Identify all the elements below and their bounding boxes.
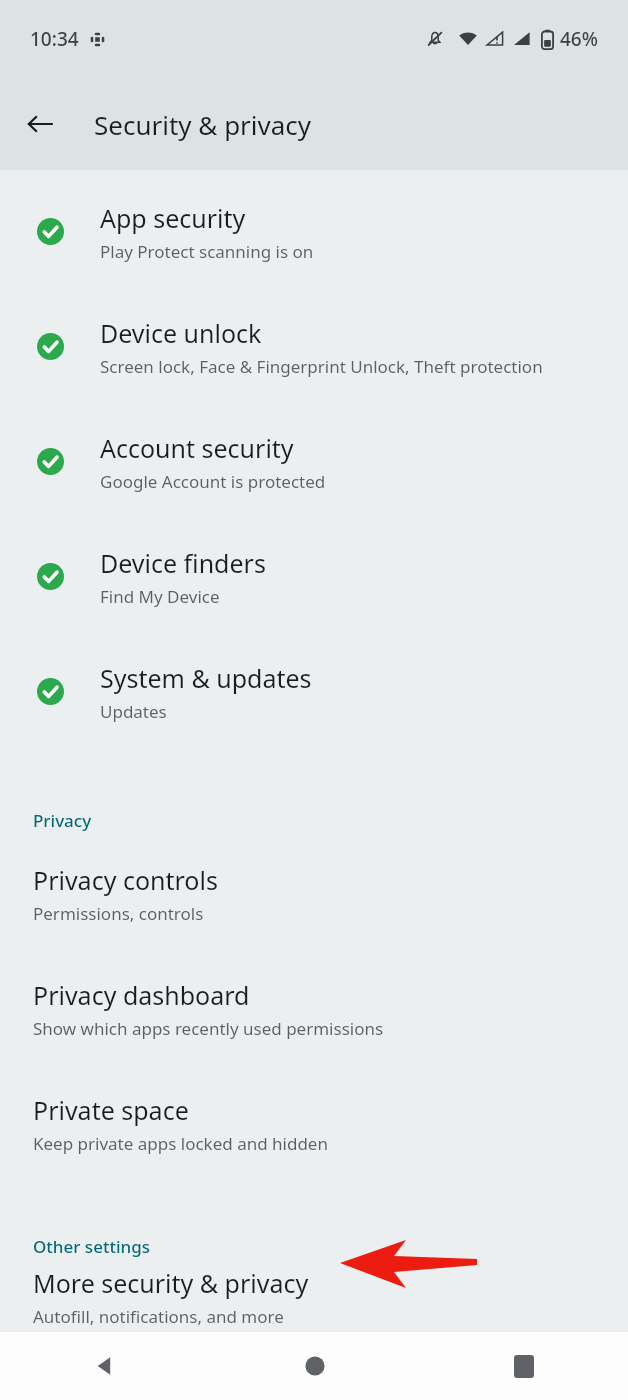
button[interactable]: Account security	[0, 404, 628, 519]
staticText: Other settings	[33, 1235, 150, 1258]
staticText: Device finders	[100, 546, 266, 580]
button[interactable]: Back	[0, 1332, 210, 1400]
staticText: Private space	[33, 1093, 189, 1127]
staticText: Show which apps recently used permission…	[33, 1017, 384, 1040]
button[interactable]: Recent apps	[419, 1332, 628, 1400]
staticText: System & updates	[100, 661, 312, 695]
button[interactable]: System & updates	[0, 634, 628, 749]
staticText: Play Protect scanning is on	[100, 240, 314, 263]
button[interactable]: Privacy controls	[0, 836, 628, 951]
button[interactable]: Privacy dashboard	[0, 951, 628, 1066]
staticText: Screen lock, Face & Fingerprint Unlock, …	[100, 355, 543, 378]
staticText: Account security	[100, 431, 294, 465]
staticText: Security & privacy	[94, 107, 312, 142]
staticText: Privacy dashboard	[33, 978, 250, 1012]
button[interactable]: App security	[0, 174, 628, 289]
button[interactable]: Back	[14, 98, 66, 150]
staticText: 46%	[560, 26, 598, 52]
staticText: More security & privacy	[33, 1266, 309, 1300]
staticText: Keep private apps locked and hidden	[33, 1132, 328, 1155]
staticText: App security	[100, 201, 246, 235]
staticText: Google Account is protected	[100, 470, 326, 493]
staticText: Device unlock	[100, 316, 262, 350]
button[interactable]: Device finders	[0, 519, 628, 634]
staticText: Updates	[100, 700, 167, 723]
staticText: Privacy controls	[33, 863, 218, 897]
button[interactable]: Device unlock	[0, 289, 628, 404]
button[interactable]: Private space	[0, 1066, 628, 1181]
staticText: 10:34	[30, 26, 79, 52]
staticText: Find My Device	[100, 585, 220, 608]
button[interactable]: Home	[210, 1332, 419, 1400]
staticText: Privacy	[33, 809, 92, 832]
staticText: Permissions, controls	[33, 902, 204, 925]
button[interactable]: More security & privacy	[0, 1262, 628, 1332]
staticText: Autofill, notifications, and more	[33, 1305, 284, 1328]
